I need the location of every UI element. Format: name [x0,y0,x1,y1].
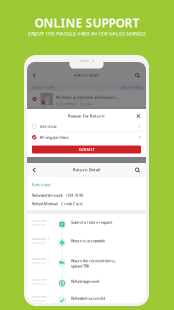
staticText: Return the received items, upload TRK [71,258,116,269]
button[interactable]: Close [134,112,142,120]
staticText: 08:54:03 [32,299,46,302]
button[interactable]: Search [133,166,142,174]
button[interactable]: Back [31,166,38,174]
staticText: 08:54:03 [32,261,46,265]
staticText: 08:54:03 [32,282,46,285]
staticText: Reason For Return [68,113,105,118]
staticText: Return Detail [73,167,100,172]
staticText: SELECT ITEM [32,84,55,90]
staticText: Wrong purchase [40,135,69,140]
staticText: Return Item [74,72,99,78]
staticText: Refunded Amount: US$ 19.99 [32,192,83,198]
staticText: Return is acceptable [71,238,105,243]
staticText: 08:54:03 [32,223,46,226]
staticText: 2020-06-11 [32,257,50,261]
staticText: 2020-06-11 [32,219,50,222]
staticText: ENJOY THE HASSLE-FREE AFTER-SALES SERVIC… [28,30,146,37]
staticText: Refunded successful [71,295,105,301]
staticText: Refund approved [71,278,99,284]
staticText: 2020-06-11 [32,295,50,298]
button[interactable]: Return Policy [121,84,143,90]
staticText: ONLINE SUPPORT [34,15,139,31]
staticText: 08:54:03 [32,241,46,245]
button[interactable]: SUBMIT [29,143,143,156]
staticText: Size issue [40,124,57,129]
button[interactable]: Back [31,72,38,79]
button[interactable]: Search [133,71,142,80]
staticText: 2020-06-11 [32,278,50,281]
staticText: 2020-06-11 [32,237,50,241]
button[interactable]: Size issue [27,121,146,131]
staticText: SUBMIT [78,147,94,152]
staticText: Michaels printed tank and Bustier/... [56,94,118,100]
staticText: Return Policy [121,84,143,90]
staticText: Refunded [32,182,50,187]
button[interactable]: Wrong purchase [27,132,146,142]
staticText: Color:White Size:M [56,101,92,107]
staticText: Refund Method: Credit Card [32,201,82,206]
staticText: Submit a return request [71,219,112,225]
